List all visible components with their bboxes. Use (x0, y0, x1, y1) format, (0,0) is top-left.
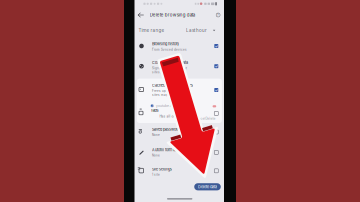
button[interactable]: Browsing history (0, 0, 360, 202)
button[interactable]: Back (0, 0, 360, 202)
staticText: sites. (152, 70, 161, 74)
staticText: 1 site (152, 173, 160, 177)
staticText: Signs you out of most (152, 66, 187, 70)
staticText: Saved passwords (152, 127, 181, 132)
staticText: youtube.com (156, 104, 177, 108)
staticText: Delete data (198, 184, 217, 189)
button[interactable]: Cached images and files (0, 0, 360, 202)
staticText: Has all on this device (159, 114, 194, 118)
staticText: ✓ (215, 44, 218, 48)
button[interactable]: Delete data (0, 0, 360, 202)
staticText: sites may load slowly. (152, 93, 187, 97)
staticText: ✓ (151, 104, 153, 107)
staticText: ✓ (215, 64, 218, 68)
staticText: Tabs (150, 108, 158, 113)
staticText: Delete (205, 117, 215, 121)
staticText: None (152, 133, 160, 137)
button[interactable]: Last hour (0, 0, 360, 202)
staticText: Last hour (186, 28, 207, 33)
staticText: Browsing history (152, 42, 179, 46)
staticText: From Synced devices (152, 48, 187, 51)
button[interactable]: Saved passwords (0, 0, 360, 202)
staticText: Autofill form data (152, 147, 180, 152)
staticText: Site settings (152, 167, 172, 171)
button[interactable]: ✓ (0, 0, 360, 202)
staticText: Cookies and site data (152, 60, 188, 65)
staticText: Frees up 4.5 MB. Some (152, 89, 189, 93)
staticText: Cancel (194, 117, 205, 121)
button[interactable]: Autofill form data (0, 0, 360, 202)
staticText: Cached images and files (152, 83, 193, 88)
button[interactable]: Help (0, 0, 360, 202)
staticText: ? (217, 13, 219, 17)
button[interactable]: Site settings (0, 0, 360, 202)
staticText: None (152, 154, 160, 157)
staticText: ✓ (215, 88, 218, 92)
staticText: Delete browsing data (150, 12, 195, 18)
button[interactable]: Cookies and site data (0, 0, 360, 202)
staticText: Time range (138, 28, 164, 33)
